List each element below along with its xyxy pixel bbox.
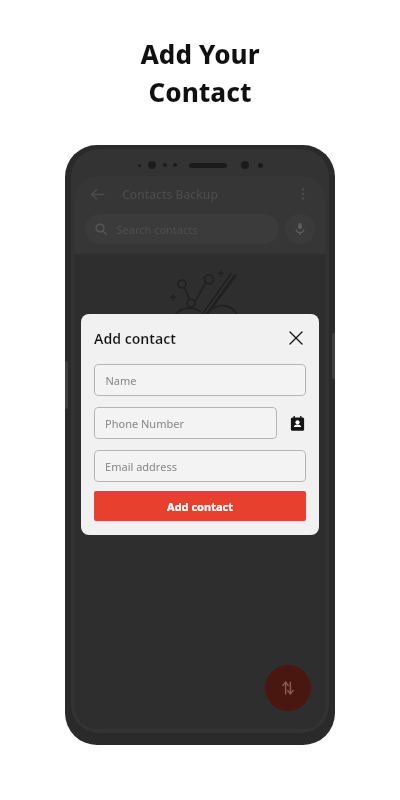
staticText: Add contact	[94, 329, 176, 348]
button[interactable]: Name	[94, 364, 306, 396]
button[interactable]: Close	[286, 328, 306, 348]
staticText: Contacts Backup	[122, 186, 218, 202]
staticText: Contact	[148, 74, 252, 109]
staticText: Email address	[105, 459, 177, 474]
button[interactable]: More options	[292, 183, 314, 205]
staticText: Phone Number	[105, 416, 184, 431]
button[interactable]: Sync contacts	[265, 665, 311, 711]
button[interactable]: Email address	[94, 450, 306, 482]
button[interactable]: Back	[86, 183, 108, 205]
button[interactable]: Phone Number	[94, 407, 277, 439]
button[interactable]: Voice search	[285, 214, 315, 244]
staticText: Search contacts	[116, 222, 198, 237]
staticText: Name	[105, 373, 137, 388]
button[interactable]: Add contact	[94, 491, 306, 521]
staticText: Add contact	[167, 499, 233, 514]
button[interactable]: Search contacts	[85, 214, 279, 244]
button[interactable]: Pick from contacts	[288, 414, 306, 432]
staticText: Add Your	[140, 36, 260, 71]
